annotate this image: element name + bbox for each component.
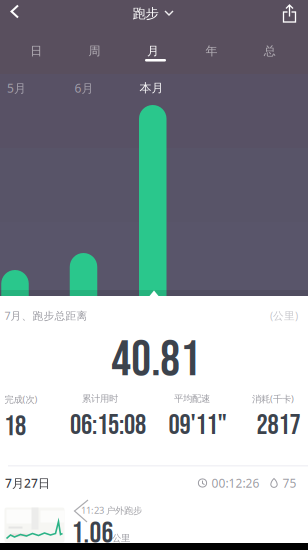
staticText: 月 [147, 44, 159, 58]
staticText: 跑步 [132, 5, 158, 22]
staticText: 周 [89, 44, 101, 58]
button[interactable]: Share [278, 3, 302, 27]
button[interactable]: 6月 [70, 253, 97, 296]
button[interactable]: 总 [241, 38, 299, 64]
button[interactable]: 年 [182, 38, 241, 64]
staticText: 7月、跑步总距离 [4, 308, 87, 323]
staticText: 完成(次) [4, 393, 37, 405]
staticText: 1.06 [71, 516, 113, 550]
button[interactable]: 日 [7, 38, 65, 64]
button[interactable]: Back [0, 0, 36, 28]
button[interactable]: 5月 [1, 270, 29, 296]
staticText: 06:15:08 [70, 409, 146, 442]
staticText: 75 [282, 475, 296, 491]
button[interactable]: 月 [124, 38, 182, 64]
staticText: 消耗(千卡) [252, 393, 294, 405]
staticText: (公里) [270, 308, 298, 323]
staticText: 累计用时 [82, 393, 118, 404]
button[interactable]: 本月 [139, 105, 166, 296]
staticText: 平均配速 [174, 393, 210, 404]
staticText: 09'11" [168, 409, 226, 442]
staticText: 00:12:26 [211, 475, 259, 491]
staticText: 2817 [256, 409, 300, 442]
button[interactable]: 跑步 [132, 5, 173, 22]
staticText: 总 [264, 44, 276, 58]
staticText: 40.81 [111, 331, 200, 390]
staticText: 5月 [7, 80, 26, 96]
staticText: 年 [205, 44, 217, 58]
staticText: 本月 [139, 81, 163, 95]
button[interactable]: 11:23 户外跑步 [0, 496, 308, 543]
staticText: 7月27日 [5, 475, 50, 491]
button[interactable]: 周 [65, 38, 124, 64]
staticText: 6月 [74, 80, 93, 96]
staticText: 18 [4, 410, 26, 444]
staticText: 日 [30, 44, 42, 58]
staticText: 公里 [112, 532, 130, 544]
staticText: 11:23 户外跑步 [81, 504, 142, 516]
